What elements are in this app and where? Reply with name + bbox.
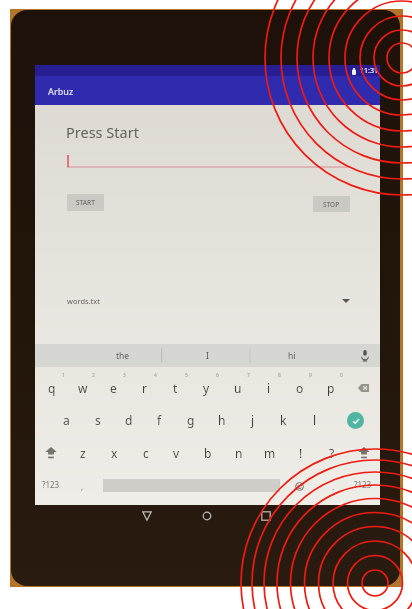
- staticText: ,: [81, 481, 84, 492]
- button[interactable]: z: [67, 436, 99, 469]
- staticText: t: [173, 380, 178, 396]
- staticText: 9: [309, 372, 312, 379]
- button[interactable]: 2: [67, 367, 98, 404]
- staticText: Press Start: [66, 122, 139, 142]
- staticText: 5: [185, 372, 188, 379]
- button[interactable]: d: [113, 404, 144, 436]
- button[interactable]: l: [299, 404, 330, 436]
- staticText: 8: [278, 372, 281, 379]
- staticText: r: [142, 380, 147, 396]
- button[interactable]: m: [254, 436, 285, 469]
- button[interactable]: ?: [316, 436, 347, 469]
- button[interactable]: 4: [129, 367, 160, 404]
- button[interactable]: START: [67, 194, 104, 211]
- button[interactable]: !: [285, 436, 316, 469]
- staticText: m: [264, 445, 276, 461]
- staticText: w: [78, 380, 88, 396]
- button[interactable]: Enter: [330, 404, 380, 436]
- staticText: START: [76, 198, 95, 207]
- staticText: x: [111, 445, 118, 461]
- staticText: 7: [247, 372, 250, 379]
- staticText: 0: [340, 372, 343, 379]
- staticText: g: [187, 412, 195, 428]
- staticText: 6: [216, 372, 219, 379]
- button[interactable]: g: [175, 404, 206, 436]
- staticText: ?123: [354, 479, 372, 490]
- button[interactable]: 8: [253, 367, 284, 404]
- button[interactable]: Shift: [35, 436, 67, 469]
- staticText: c: [143, 445, 149, 461]
- button[interactable]: ?123: [347, 469, 379, 505]
- staticText: z: [80, 445, 86, 461]
- button[interactable]: 9: [284, 367, 315, 404]
- button[interactable]: 5: [160, 367, 191, 404]
- button[interactable]: ?123: [35, 469, 67, 505]
- staticText: h: [218, 412, 226, 428]
- staticText: 3: [123, 372, 126, 379]
- button[interactable]: Space: [103, 479, 280, 492]
- staticText: d: [125, 412, 133, 428]
- button[interactable]: 0: [315, 367, 346, 404]
- staticText: s: [95, 412, 101, 428]
- staticText: u: [234, 380, 242, 396]
- button[interactable]: b: [192, 436, 223, 469]
- button[interactable]: the: [79, 344, 167, 367]
- staticText: e: [110, 380, 117, 396]
- staticText: v: [173, 445, 180, 461]
- button[interactable]: Shift: [347, 436, 380, 469]
- button[interactable]: k: [268, 404, 299, 436]
- staticText: n: [235, 445, 243, 461]
- button[interactable]: I: [162, 344, 252, 367]
- button[interactable]: Home: [192, 504, 222, 528]
- staticText: k: [280, 412, 287, 428]
- staticText: .: [332, 481, 335, 492]
- button[interactable]: x: [99, 436, 130, 469]
- button[interactable]: 1: [37, 367, 67, 404]
- staticText: STOP: [323, 200, 340, 209]
- staticText: l: [313, 412, 317, 428]
- staticText: 4: [154, 372, 157, 379]
- staticText: 11:31: [360, 66, 378, 76]
- button[interactable]: 6: [191, 367, 222, 404]
- staticText: j: [251, 412, 255, 428]
- button[interactable]: h: [206, 404, 237, 436]
- button[interactable]: Emoji: [287, 474, 312, 498]
- button[interactable]: n: [223, 436, 254, 469]
- staticText: b: [204, 445, 212, 461]
- staticText: !: [299, 445, 303, 461]
- button[interactable]: 3: [98, 367, 129, 404]
- button[interactable]: Recent apps: [251, 504, 281, 528]
- staticText: I: [206, 350, 209, 362]
- button[interactable]: s: [82, 404, 113, 436]
- staticText: hi: [288, 350, 296, 362]
- staticText: ?: [329, 445, 335, 461]
- staticText: a: [63, 412, 70, 428]
- staticText: f: [157, 412, 162, 428]
- staticText: words.txt: [67, 296, 100, 306]
- button[interactable]: Back: [132, 504, 162, 528]
- button[interactable]: j: [237, 404, 268, 436]
- staticText: 1: [62, 372, 65, 379]
- staticText: p: [327, 380, 335, 396]
- staticText: 2: [92, 372, 95, 379]
- button[interactable]: STOP: [313, 196, 350, 212]
- staticText: the: [116, 350, 130, 362]
- staticText: y: [203, 380, 210, 396]
- button[interactable]: Voice input: [352, 344, 378, 367]
- button[interactable]: hi: [247, 344, 337, 367]
- button[interactable]: .: [322, 469, 344, 505]
- button[interactable]: c: [130, 436, 161, 469]
- button[interactable]: Backspace: [346, 367, 380, 404]
- button[interactable]: v: [161, 436, 192, 469]
- staticText: i: [267, 380, 271, 396]
- staticText: ?123: [42, 479, 60, 490]
- button[interactable]: a: [51, 404, 82, 436]
- button[interactable]: 7: [222, 367, 253, 404]
- button[interactable]: f: [144, 404, 175, 436]
- staticText: Arbuz: [48, 85, 74, 97]
- button[interactable]: words.txt: [67, 294, 350, 308]
- staticText: o: [296, 380, 304, 396]
- staticText: q: [48, 380, 56, 396]
- button[interactable]: [67, 155, 350, 168]
